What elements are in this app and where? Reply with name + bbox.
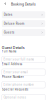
button[interactable]: Enter your email: [2, 69, 45, 75]
staticText: Enter your full name: [3, 58, 34, 61]
button[interactable]: Back: [4, 2, 8, 6]
staticText: Deluxe Room: [4, 22, 25, 25]
button[interactable]: Enter your full name: [2, 56, 45, 63]
button[interactable]: Enter phone number: [2, 82, 45, 88]
button[interactable]: Optional notes: [2, 94, 45, 100]
staticText: Enter phone number: [3, 83, 34, 87]
staticText: Guest Details: [2, 46, 25, 50]
staticText: Special Requests: [2, 88, 28, 91]
staticText: Enter your email: [3, 70, 28, 74]
staticText: Email Address: [2, 62, 22, 66]
staticText: Guests: [4, 31, 15, 34]
button[interactable]: Dates: [2, 11, 45, 18]
button[interactable]: Guests: [2, 29, 45, 36]
button[interactable]: Deluxe Room: [2, 20, 45, 27]
staticText: Optional notes: [3, 96, 25, 99]
staticText: Full Name: [2, 50, 17, 53]
staticText: Booking Details: [11, 2, 36, 6]
staticText: Dates: [4, 13, 13, 16]
staticText: Phone Number: [2, 75, 24, 79]
